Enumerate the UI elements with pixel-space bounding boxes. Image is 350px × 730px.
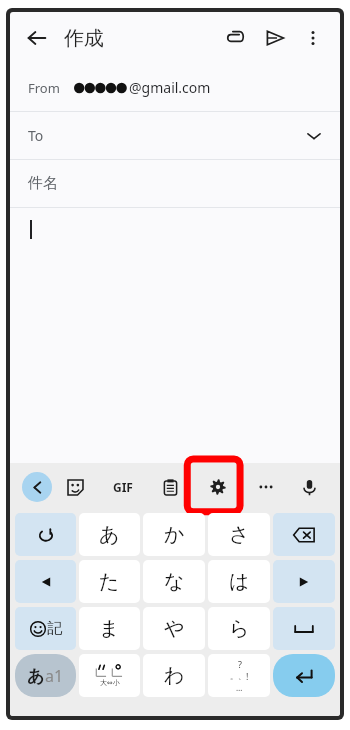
button[interactable]: Backspace [273,513,335,556]
button[interactable]: や [143,607,205,650]
button[interactable]: Punctuation [208,654,270,697]
button[interactable]: あ [79,513,140,556]
staticText: 大⇔小 [100,678,120,687]
button[interactable]: Switch input mode [15,654,76,697]
staticText: ? [238,658,242,670]
button[interactable] [10,208,340,463]
button[interactable]: Enter [273,654,335,697]
button[interactable]: Attach [218,21,252,55]
button[interactable]: か [143,513,205,556]
button[interactable]: Move cursor left [15,560,76,603]
button[interactable]: Move cursor right [273,560,335,603]
staticText: @gmail.com [129,78,211,97]
button[interactable]: Send [258,21,292,55]
staticText: … [236,682,243,693]
button[interactable]: Space [273,607,335,650]
staticText: 、 [238,671,246,681]
staticText: や [164,616,185,641]
staticText: From [28,79,60,97]
staticText: 件名 [28,174,58,193]
button[interactable]: さ [208,513,270,556]
staticText: は [229,569,250,594]
button[interactable]: More options [296,21,330,55]
staticText: ら [229,616,250,641]
button[interactable]: は [208,560,270,603]
button[interactable]: な [143,560,205,603]
button[interactable]: た [79,560,140,603]
button[interactable]: Emoji and symbols [15,607,76,650]
button[interactable]: Back [20,21,54,55]
staticText: ま [99,616,120,641]
staticText: な [164,569,185,594]
staticText: わ [164,663,185,688]
staticText: To [28,126,44,145]
staticText: た [99,569,120,594]
button[interactable]: From [10,64,340,111]
button[interactable]: ら [208,607,270,650]
button[interactable]: Sticker [52,463,99,511]
staticText: あ [99,522,120,547]
staticText: 作成 [64,26,104,51]
button[interactable]: ま [79,607,140,650]
button[interactable]: Voice input [290,463,328,511]
button[interactable]: GIF [99,463,146,511]
staticText: GIF [113,479,133,495]
staticText: 。 [230,671,238,681]
staticText: 記 [47,619,62,638]
staticText: ! [246,670,249,682]
button[interactable]: 件名 [10,160,340,207]
button[interactable]: Dakuten and small kana [79,654,140,697]
staticText: さ [229,522,250,547]
button[interactable]: More [242,463,290,511]
button[interactable]: Settings [194,463,242,511]
button[interactable]: Clipboard [146,463,194,511]
staticText: a1 [45,665,64,687]
button[interactable]: To [10,112,340,159]
staticText: あ [27,666,45,687]
staticText: か [164,522,185,547]
button[interactable]: Undo [15,513,76,556]
button[interactable]: Back [22,472,52,502]
button[interactable]: わ [143,654,205,697]
